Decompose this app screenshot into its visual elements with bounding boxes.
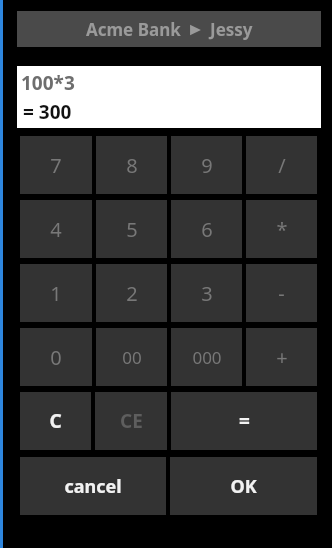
button[interactable]: 0	[20, 328, 92, 386]
staticText: Jessy	[210, 18, 253, 41]
button[interactable]: 7	[20, 136, 92, 194]
button[interactable]: CE	[95, 392, 167, 450]
button[interactable]: Acme Bank	[17, 11, 321, 47]
staticText: 00	[122, 346, 142, 369]
staticText: 4	[50, 216, 62, 243]
button[interactable]: 8	[96, 136, 167, 194]
button[interactable]: 00	[96, 328, 167, 386]
staticText: +	[276, 344, 288, 371]
button[interactable]: *	[246, 200, 317, 258]
button[interactable]: 6	[171, 200, 242, 258]
button[interactable]: C	[20, 392, 91, 450]
button[interactable]: 5	[96, 200, 167, 258]
staticText: /	[278, 152, 286, 179]
staticText: OK	[230, 474, 257, 499]
staticText: *	[276, 216, 288, 243]
staticText: 2	[126, 280, 138, 307]
button[interactable]: /	[246, 136, 317, 194]
staticText: 100*3	[21, 70, 75, 96]
staticText: 8	[126, 152, 138, 179]
staticText: 1	[50, 280, 62, 307]
button[interactable]: 9	[171, 136, 242, 194]
button[interactable]: 000	[171, 328, 242, 386]
staticText: =	[239, 408, 250, 434]
button[interactable]: cancel	[20, 457, 166, 515]
staticText: CE	[120, 408, 143, 434]
button[interactable]: =	[171, 392, 317, 450]
button[interactable]: 100*3	[17, 66, 321, 128]
staticText: 000	[192, 346, 222, 369]
button[interactable]: 3	[171, 264, 242, 322]
button[interactable]: 2	[96, 264, 167, 322]
button[interactable]: 1	[20, 264, 92, 322]
staticText: 7	[50, 152, 62, 179]
staticText: C	[49, 408, 62, 434]
staticText: cancel	[64, 474, 122, 499]
staticText: 3	[201, 280, 213, 307]
staticText: Acme Bank	[86, 18, 181, 41]
staticText: 9	[201, 152, 213, 179]
staticText: 6	[201, 216, 213, 243]
staticText: -	[278, 280, 285, 307]
button[interactable]: OK	[170, 457, 317, 515]
staticText: 0	[50, 344, 62, 371]
button[interactable]: 4	[20, 200, 92, 258]
staticText: 5	[126, 216, 138, 243]
staticText: = 300	[23, 99, 72, 125]
button[interactable]: +	[246, 328, 317, 386]
